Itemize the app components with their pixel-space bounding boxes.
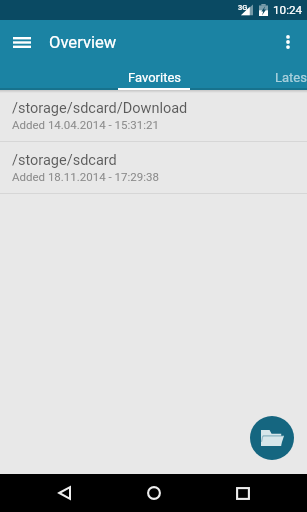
button[interactable]: Open navigation drawer — [0, 20, 44, 64]
button[interactable]: Back — [42, 474, 86, 512]
button[interactable]: More options — [270, 20, 306, 64]
button[interactable]: Recent apps — [221, 474, 265, 512]
staticText: Latest — [275, 70, 307, 85]
staticText: Favorites — [128, 70, 181, 85]
staticText: 10:24 — [273, 3, 303, 17]
staticText: Added 18.11.2014 - 17:29:38 — [12, 170, 159, 183]
button[interactable]: /storage/sdcard — [0, 142, 307, 193]
staticText: 3G — [238, 3, 248, 12]
button[interactable]: Open folder — [250, 416, 294, 460]
staticText: Added 14.04.2014 - 15:31:21 — [12, 118, 159, 131]
button[interactable]: /storage/sdcard/Download — [0, 90, 307, 141]
staticText: /storage/sdcard — [12, 152, 117, 169]
button[interactable]: Latest — [257, 64, 307, 90]
staticText: /storage/sdcard/Download — [12, 100, 188, 117]
button[interactable]: Favorites — [118, 64, 190, 90]
staticText: Overview — [49, 33, 117, 52]
button[interactable]: Home — [131, 474, 176, 512]
